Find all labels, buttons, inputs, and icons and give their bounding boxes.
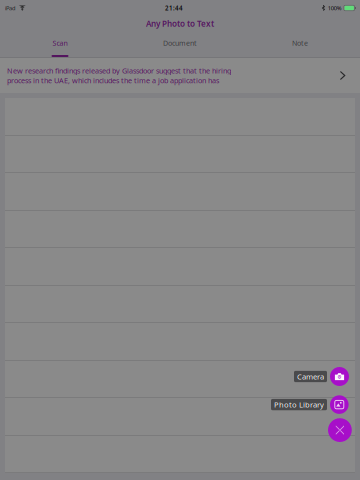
button[interactable]: Close menu [328,418,352,442]
button[interactable]: New research findings released by Glassd… [0,58,360,93]
staticText: New research findings released by Glassd… [7,66,231,85]
staticText: 21:44 [165,4,183,12]
staticText: Any Photo to Text [146,18,214,29]
staticText: Photo Library [274,400,324,410]
button[interactable]: Scan [0,31,120,58]
staticText: iPad [5,4,16,12]
button[interactable]: Camera [294,367,349,386]
staticText: Scan [52,38,67,48]
button[interactable]: Photo Library [271,395,349,414]
staticText: 100% [328,4,342,12]
staticText: Note [292,38,308,48]
button[interactable]: Document [120,31,240,58]
staticText: Document [163,38,197,48]
button[interactable]: Note [240,31,360,58]
staticText: Camera [297,371,324,382]
